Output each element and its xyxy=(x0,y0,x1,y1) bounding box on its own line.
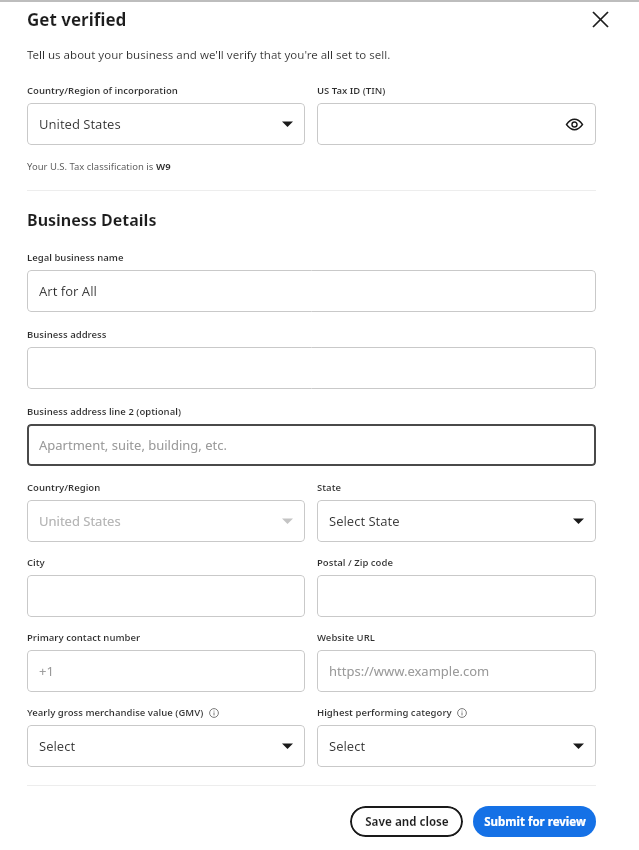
staticText: Select xyxy=(329,737,366,755)
staticText: Select xyxy=(39,737,76,755)
button[interactable]: Show US Tax ID xyxy=(317,103,596,145)
button[interactable]: https://www.example.com xyxy=(317,650,596,692)
staticText: Postal / Zip code xyxy=(317,556,393,569)
staticText: Primary contact number xyxy=(27,631,141,644)
button[interactable] xyxy=(317,575,596,617)
staticText: Website URL xyxy=(317,631,376,644)
staticText: W9 xyxy=(156,160,171,173)
staticText: Apartment, suite, building, etc. xyxy=(39,436,227,454)
button[interactable] xyxy=(27,575,305,617)
staticText: +1 xyxy=(39,662,54,680)
staticText: Country/Region of incorporation xyxy=(27,84,178,97)
staticText: Business address xyxy=(27,328,107,341)
staticText: Business Details xyxy=(27,209,157,231)
staticText: https://www.example.com xyxy=(329,662,490,680)
button[interactable]: Select xyxy=(317,725,596,767)
staticText: Legal business name xyxy=(27,251,124,264)
staticText: Highest performing category xyxy=(317,706,452,719)
staticText: US Tax ID (TIN) xyxy=(317,84,386,97)
staticText: Select State xyxy=(329,512,400,530)
staticText: Get verified xyxy=(27,8,127,31)
button[interactable]: United States xyxy=(27,103,305,145)
staticText: Yearly gross merchandise value (GMV) xyxy=(27,706,204,719)
button[interactable]: Save and close xyxy=(350,806,463,837)
button[interactable]: United States xyxy=(27,500,305,542)
staticText: Submit for review xyxy=(484,814,586,830)
button[interactable]: Apartment, suite, building, etc. xyxy=(27,424,596,466)
button[interactable]: Show US Tax ID xyxy=(564,114,584,134)
staticText: United States xyxy=(39,115,121,133)
staticText: Save and close xyxy=(365,814,449,830)
button[interactable] xyxy=(27,347,596,389)
staticText: State xyxy=(317,481,342,494)
button[interactable]: Select State xyxy=(317,500,596,542)
button[interactable]: Close xyxy=(585,4,615,34)
staticText: Art for All xyxy=(39,282,97,300)
staticText: City xyxy=(27,556,45,569)
staticText: Country/Region xyxy=(27,481,101,494)
staticText: Tell us about your business and we'll ve… xyxy=(27,47,391,63)
staticText: Business address line 2 (optional) xyxy=(27,405,181,418)
button[interactable]: Select xyxy=(27,725,305,767)
staticText: Your U.S. Tax classification is xyxy=(27,160,156,173)
staticText: United States xyxy=(39,512,121,530)
button[interactable]: Submit for review xyxy=(473,806,596,837)
button[interactable]: Art for All xyxy=(27,270,596,312)
button[interactable]: +1 xyxy=(27,650,305,692)
